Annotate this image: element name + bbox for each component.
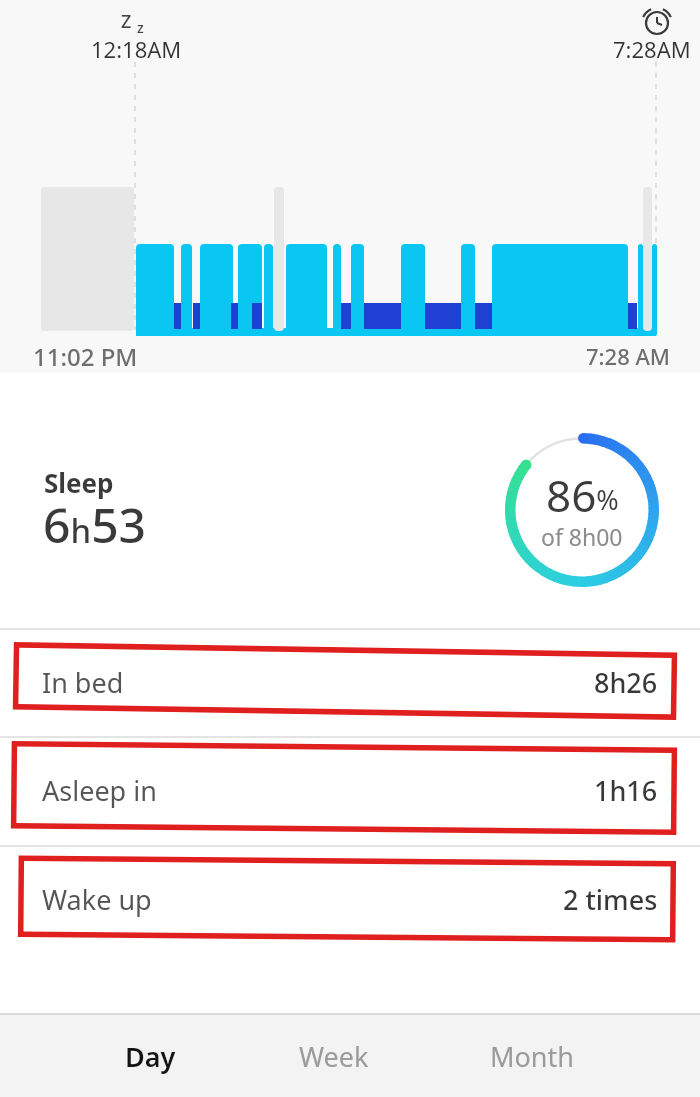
staticText: Z	[121, 9, 132, 34]
staticText: 86%	[546, 465, 619, 525]
staticText: Week	[299, 1038, 369, 1075]
staticText: of 8h00	[541, 521, 623, 552]
button[interactable]: Month	[457, 1015, 607, 1097]
staticText: Month	[490, 1038, 574, 1075]
staticText: In bed	[42, 664, 124, 701]
staticText: 11:02 PM	[33, 340, 138, 373]
staticText: 2 times	[563, 881, 658, 918]
staticText: 6h53	[43, 492, 147, 557]
button[interactable]: Wake up	[0, 846, 700, 952]
staticText: 7:28AM	[613, 34, 691, 64]
staticText: 1h16	[594, 772, 658, 809]
staticText: 8h26	[594, 664, 658, 701]
staticText: 12:18AM	[91, 34, 182, 64]
button[interactable]: Week	[259, 1015, 409, 1097]
staticText: Day	[125, 1038, 176, 1075]
button[interactable]: Asleep in	[0, 737, 700, 843]
button[interactable]: In bed	[0, 629, 700, 735]
staticText: z	[137, 18, 144, 37]
staticText: Asleep in	[42, 772, 157, 809]
button[interactable]: Day	[75, 1015, 225, 1097]
staticText: Wake up	[42, 881, 152, 918]
staticText: Sleep	[44, 465, 114, 500]
staticText: 7:28 AM	[586, 341, 671, 371]
